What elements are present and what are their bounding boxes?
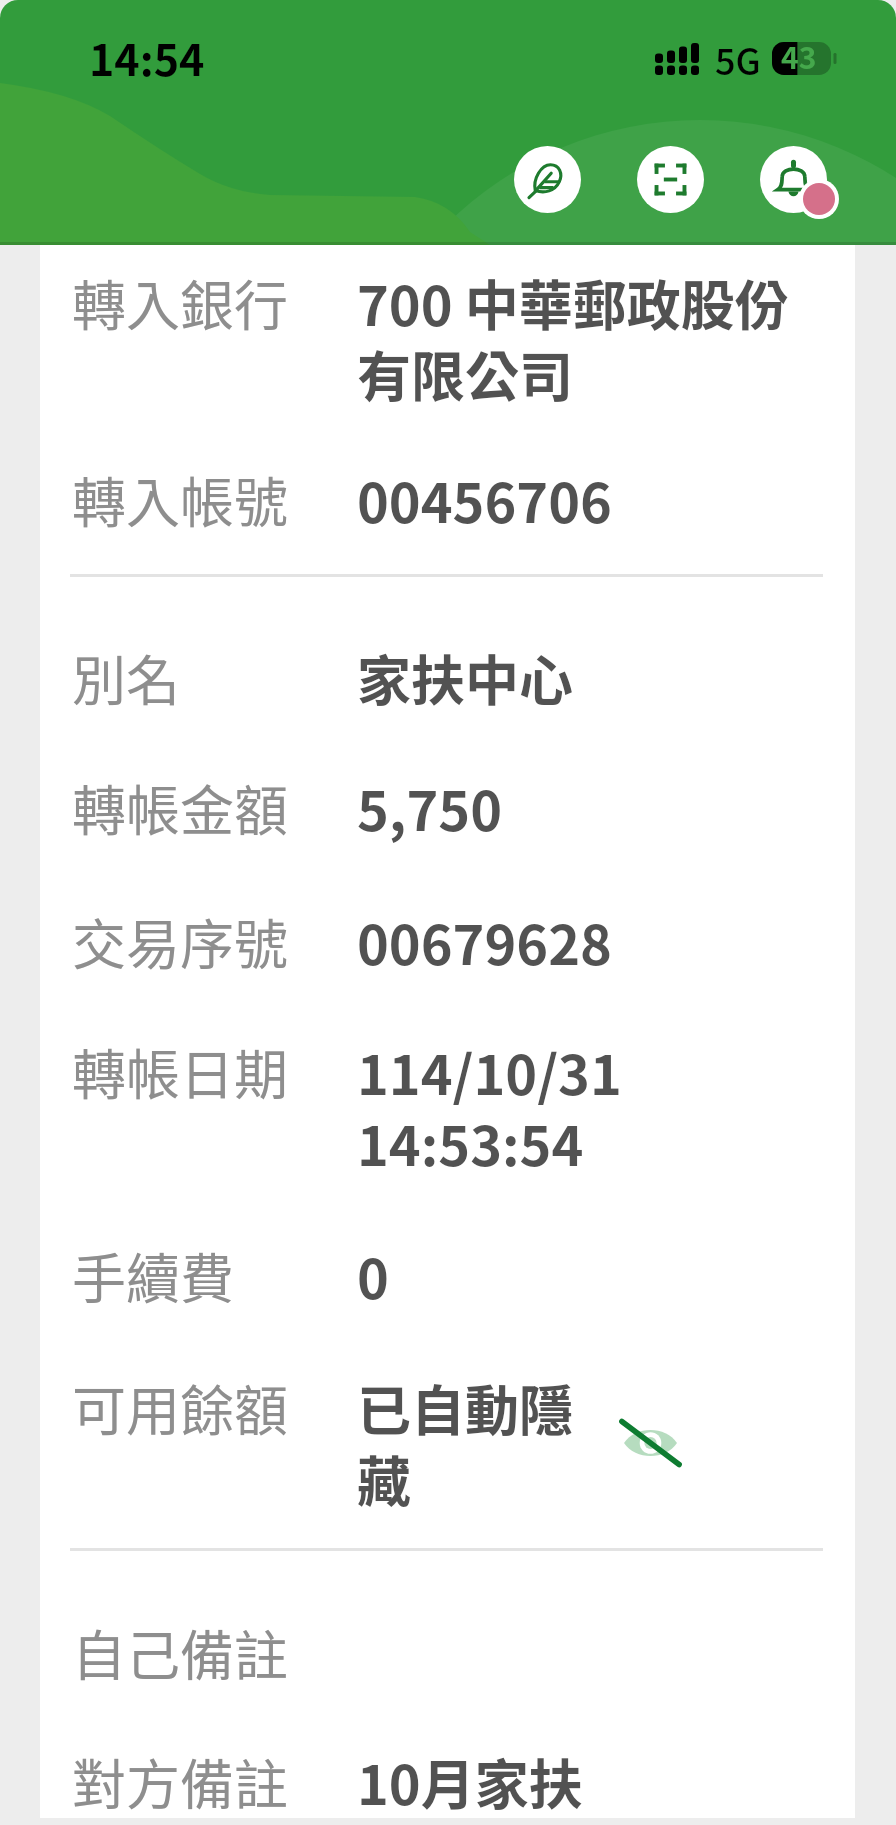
staticText: 轉入銀行 [72, 269, 357, 340]
button[interactable]: Scan [637, 146, 704, 213]
staticText: 別名 [72, 644, 357, 715]
staticText: 00679628 [357, 908, 807, 979]
staticText: 自己備註 [72, 1619, 357, 1690]
button[interactable]: Compose [514, 146, 581, 213]
staticText: 可用餘額 [72, 1374, 357, 1445]
staticText: 114/10/31 14:53:54 [357, 1038, 807, 1180]
staticText: 43 [781, 39, 817, 72]
staticText: 家扶中心 [357, 644, 807, 715]
staticText: 5G [715, 33, 761, 85]
staticText: 0 [357, 1242, 807, 1313]
staticText: 14:54 [89, 26, 205, 88]
staticText: 手續費 [72, 1242, 357, 1313]
staticText: 00456706 [357, 466, 807, 537]
staticText: 700 中華郵政股份有限公司 [357, 269, 807, 411]
staticText: 轉入帳號 [72, 466, 357, 537]
staticText: 交易序號 [72, 908, 357, 979]
button[interactable]: Show balance [611, 1410, 689, 1476]
staticText: 轉帳日期 [72, 1038, 357, 1109]
staticText: 對方備註 [72, 1748, 357, 1819]
staticText: 已自動隱藏 [357, 1374, 597, 1516]
staticText: 10月家扶 [357, 1748, 807, 1819]
staticText: 轉帳金額 [72, 774, 357, 845]
staticText: 5,750 [357, 774, 807, 845]
button[interactable]: Notifications [760, 146, 827, 213]
